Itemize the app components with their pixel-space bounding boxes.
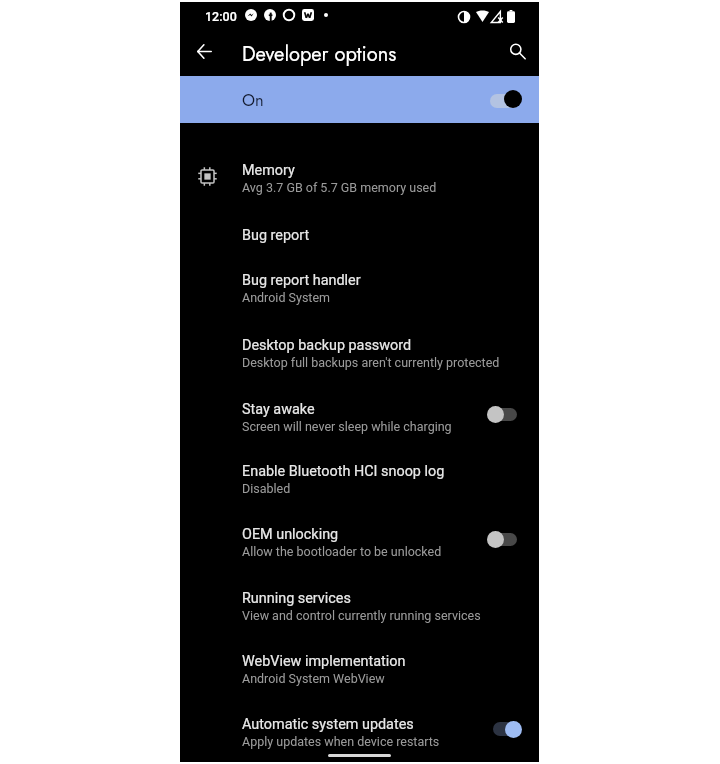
staticText: Desktop backup password (242, 337, 412, 354)
staticText: Apply updates when device restarts (242, 734, 440, 749)
button[interactable]: Desktop backup password (180, 328, 539, 376)
button[interactable]: OEM unlocking toggle, off (479, 522, 525, 556)
staticText: Screen will never sleep while charging (242, 419, 452, 434)
staticText: Avg 3.7 GB of 5.7 GB memory used (242, 180, 437, 195)
staticText: Disabled (242, 481, 291, 496)
button[interactable]: Stay awake (180, 392, 539, 440)
staticText: Allow the bootloader to be unlocked (242, 544, 442, 559)
staticText: Running services (242, 590, 351, 607)
button[interactable]: Stay awake toggle, off (479, 397, 525, 431)
button[interactable]: OEM unlocking (180, 517, 539, 565)
button[interactable]: Running services (180, 581, 539, 629)
staticText: View and control currently running servi… (242, 608, 481, 623)
staticText: Bug report (242, 227, 310, 244)
staticText: Bug report handler (242, 272, 361, 289)
button[interactable]: Automatic system updates toggle, on (485, 712, 530, 746)
staticText: On (242, 88, 264, 112)
staticText: Desktop full backups aren't currently pr… (242, 355, 500, 370)
staticText: Developer options (242, 40, 397, 69)
staticText: OEM unlocking (242, 526, 339, 543)
staticText: WebView implementation (242, 653, 406, 670)
staticText: Stay awake (242, 401, 315, 418)
staticText: Automatic system updates (242, 716, 414, 733)
button[interactable]: Search (499, 33, 535, 69)
staticText: Android System (242, 290, 331, 305)
button[interactable]: WebView implementation (180, 644, 539, 692)
button[interactable]: Automatic system updates (180, 707, 539, 755)
button[interactable]: On (180, 76, 539, 123)
staticText: Android System WebView (242, 671, 385, 686)
button[interactable]: Enable Bluetooth HCI snoop log (180, 454, 539, 502)
button[interactable]: Memory (180, 153, 539, 201)
button[interactable]: Bug report handler (180, 263, 539, 311)
button[interactable]: Bug report (180, 218, 539, 252)
staticText: Memory (242, 162, 295, 179)
staticText: 12:00 (205, 9, 237, 24)
staticText: Enable Bluetooth HCI snoop log (242, 463, 445, 480)
button[interactable]: Back (186, 33, 222, 69)
